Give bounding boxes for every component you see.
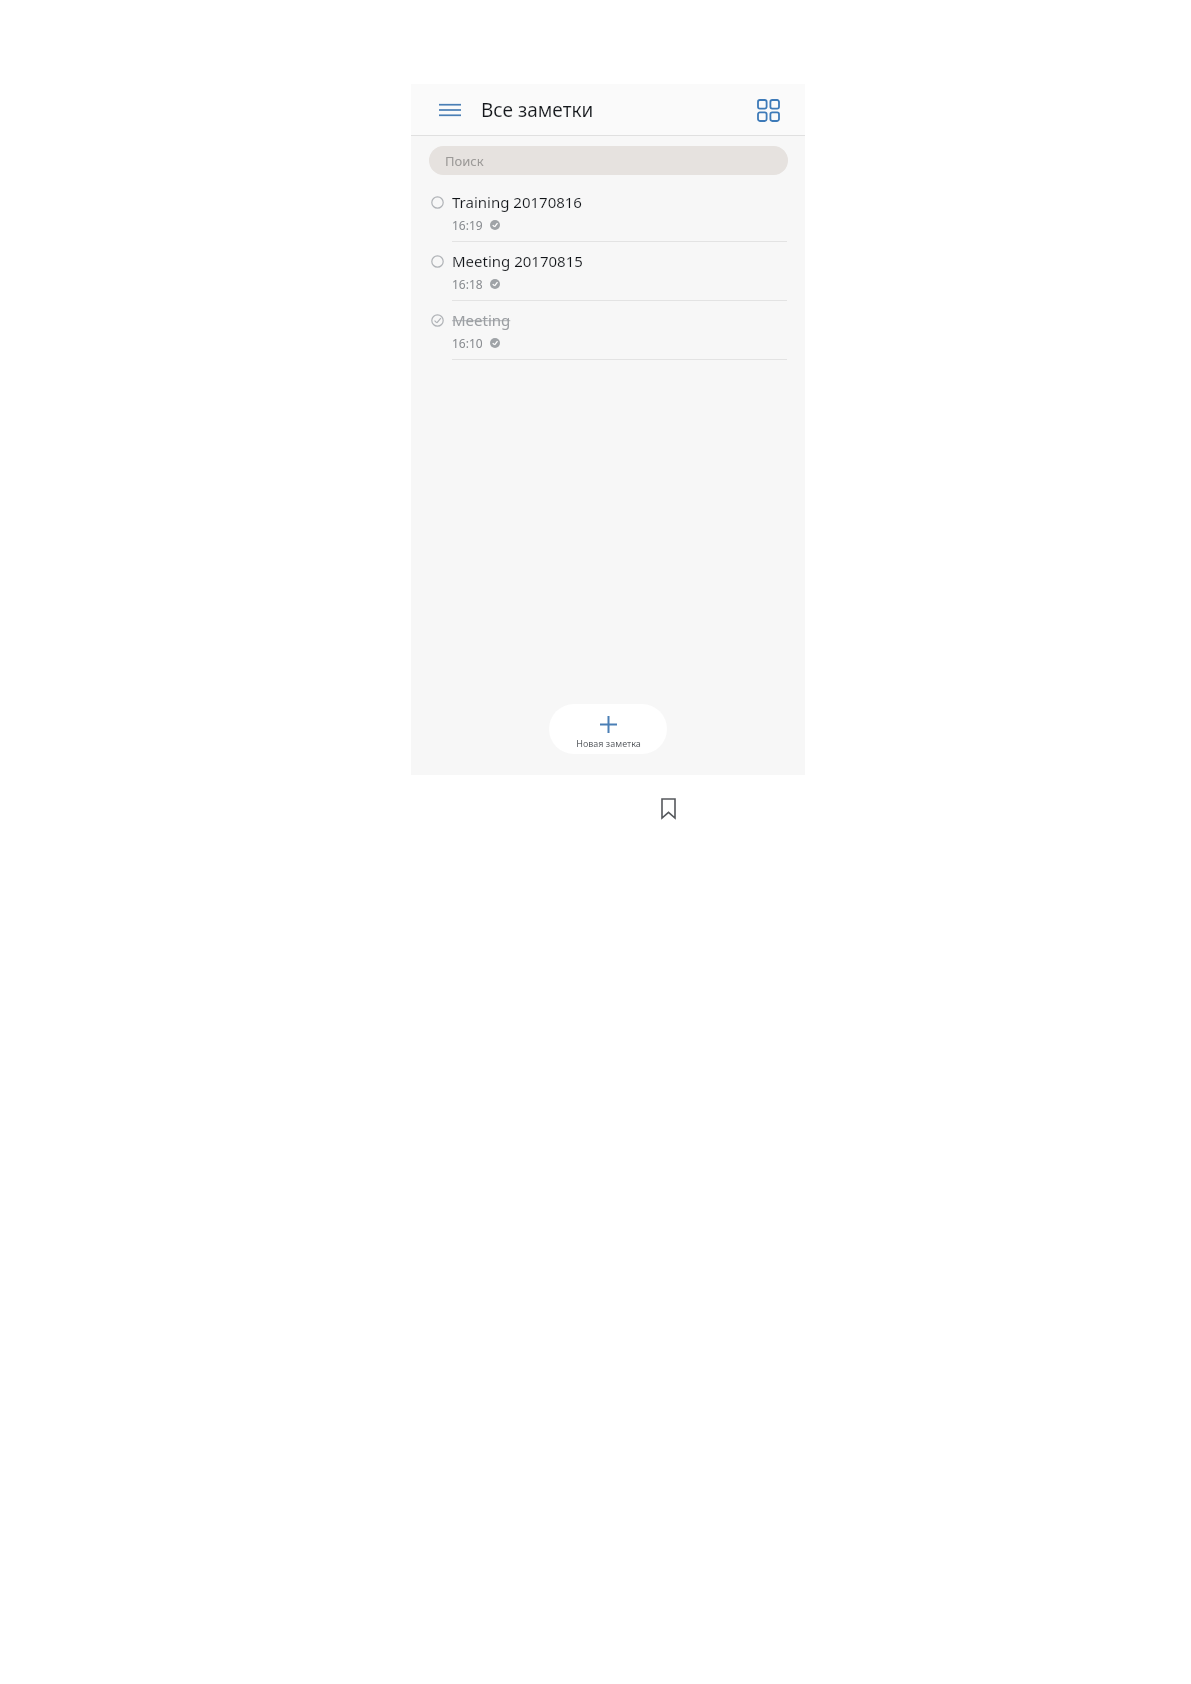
button[interactable]: Поиск bbox=[429, 146, 788, 175]
staticText: Meeting bbox=[452, 310, 511, 330]
staticText: Meeting 20170815 bbox=[452, 251, 583, 271]
button[interactable]: Training 20170816 bbox=[411, 183, 805, 242]
staticText: Все заметки bbox=[481, 97, 594, 123]
button[interactable]: Menu bbox=[431, 91, 469, 129]
staticText: 16:18 bbox=[452, 276, 483, 292]
staticText: 16:19 bbox=[452, 217, 483, 233]
button[interactable]: Meeting bbox=[411, 301, 805, 360]
button[interactable]: Bookmark bbox=[655, 795, 681, 821]
button[interactable]: Meeting 20170815 bbox=[411, 242, 805, 301]
button[interactable]: Switch view bbox=[749, 91, 787, 129]
staticText: Новая заметка bbox=[576, 737, 641, 749]
staticText: Training 20170816 bbox=[452, 192, 582, 212]
button[interactable]: Новая заметка bbox=[549, 704, 667, 754]
staticText: 16:10 bbox=[452, 335, 483, 351]
staticText: Поиск bbox=[445, 152, 484, 170]
